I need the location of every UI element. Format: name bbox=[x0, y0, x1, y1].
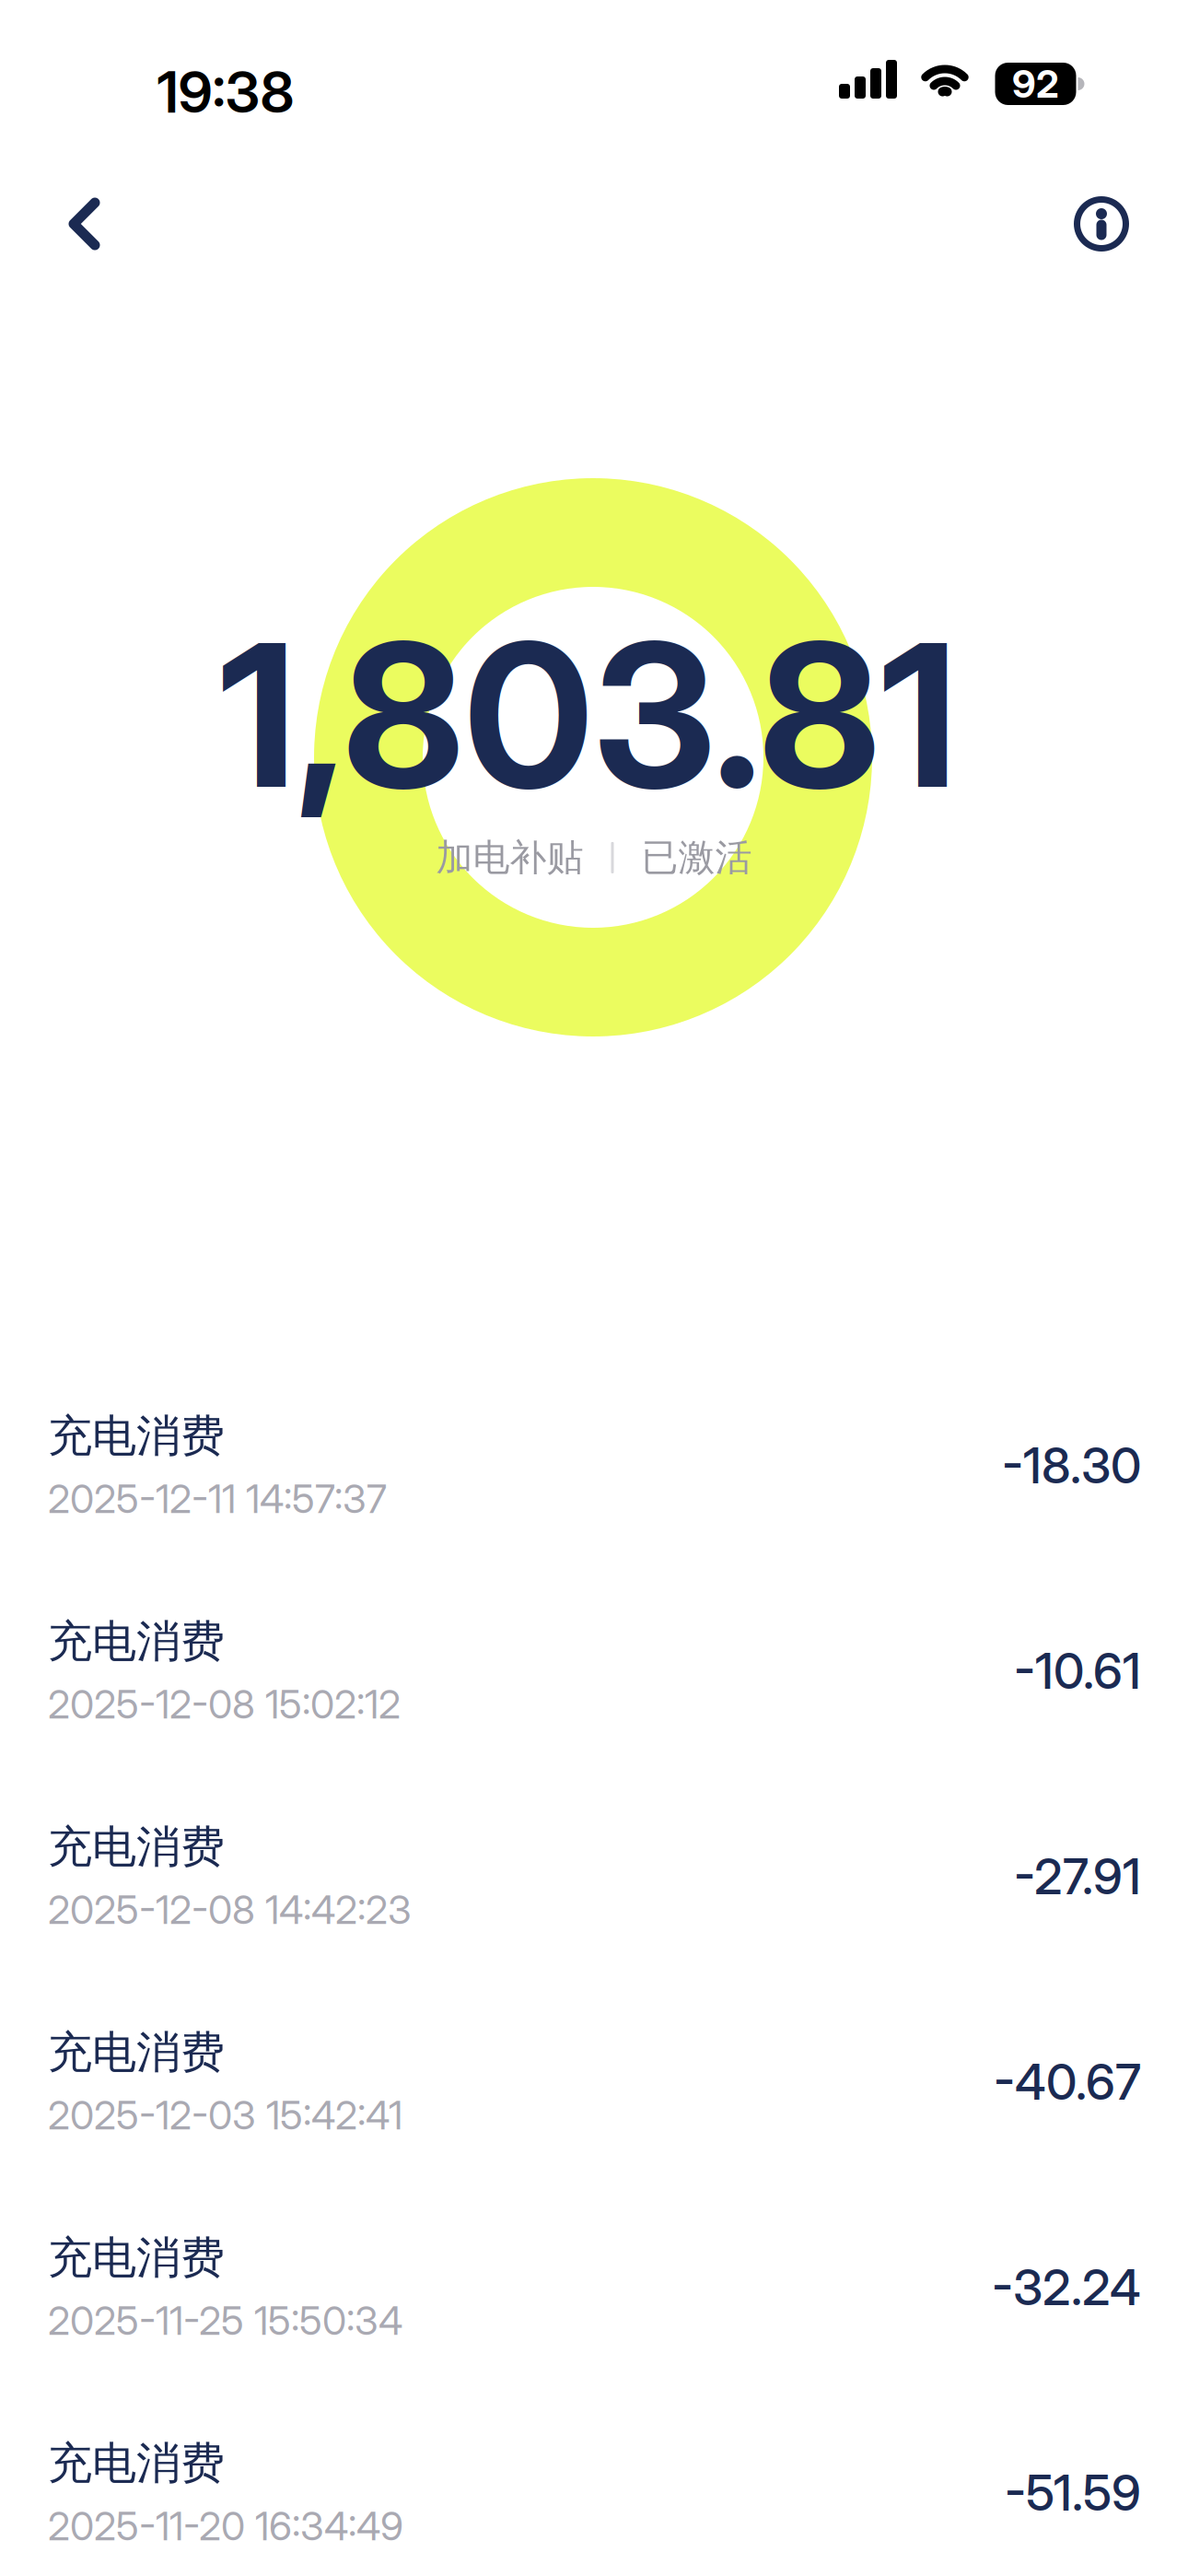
staticText: 2025-12-03 15:42:41 bbox=[48, 2091, 402, 2139]
staticText: -27.91 bbox=[1014, 1847, 1141, 1906]
staticText: 充电消费 bbox=[48, 2435, 225, 2491]
button[interactable]: 充电消费 bbox=[0, 2390, 1188, 2576]
staticText: 加电补贴 bbox=[436, 834, 583, 881]
staticText: 2025-11-25 15:50:34 bbox=[48, 2297, 402, 2344]
button[interactable]: 充电消费 bbox=[0, 2184, 1188, 2390]
button[interactable]: 充电消费 bbox=[0, 1568, 1188, 1774]
button[interactable]: Back bbox=[0, 188, 131, 260]
staticText: 1,803.81 bbox=[219, 595, 958, 834]
staticText: 2025-12-08 14:42:23 bbox=[48, 1886, 412, 1933]
staticText: 已激活 bbox=[641, 834, 752, 881]
staticText: -32.24 bbox=[992, 2257, 1141, 2317]
staticText: 2025-11-20 16:34:49 bbox=[48, 2502, 403, 2550]
button[interactable]: 充电消费 bbox=[0, 1774, 1188, 1979]
staticText: -40.67 bbox=[994, 2052, 1141, 2111]
staticText: -10.61 bbox=[1014, 1641, 1141, 1700]
staticText: 充电消费 bbox=[48, 1614, 225, 1669]
staticText: -18.30 bbox=[1002, 1436, 1141, 1495]
staticText: 充电消费 bbox=[48, 1408, 225, 1464]
staticText: 2025-12-11 14:57:37 bbox=[48, 1475, 387, 1522]
staticText: 2025-12-08 15:02:12 bbox=[48, 1680, 401, 1728]
button[interactable]: Info bbox=[1074, 187, 1188, 261]
staticText: -51.59 bbox=[1005, 2463, 1141, 2522]
button[interactable]: 充电消费 bbox=[0, 1979, 1188, 2184]
staticText: 充电消费 bbox=[48, 2230, 225, 2286]
staticText: 充电消费 bbox=[48, 2025, 225, 2080]
staticText: 92 bbox=[1012, 61, 1059, 107]
staticText: 19:38 bbox=[157, 58, 294, 126]
staticText: 充电消费 bbox=[48, 1819, 225, 1875]
button[interactable]: 充电消费 bbox=[0, 1363, 1188, 1568]
